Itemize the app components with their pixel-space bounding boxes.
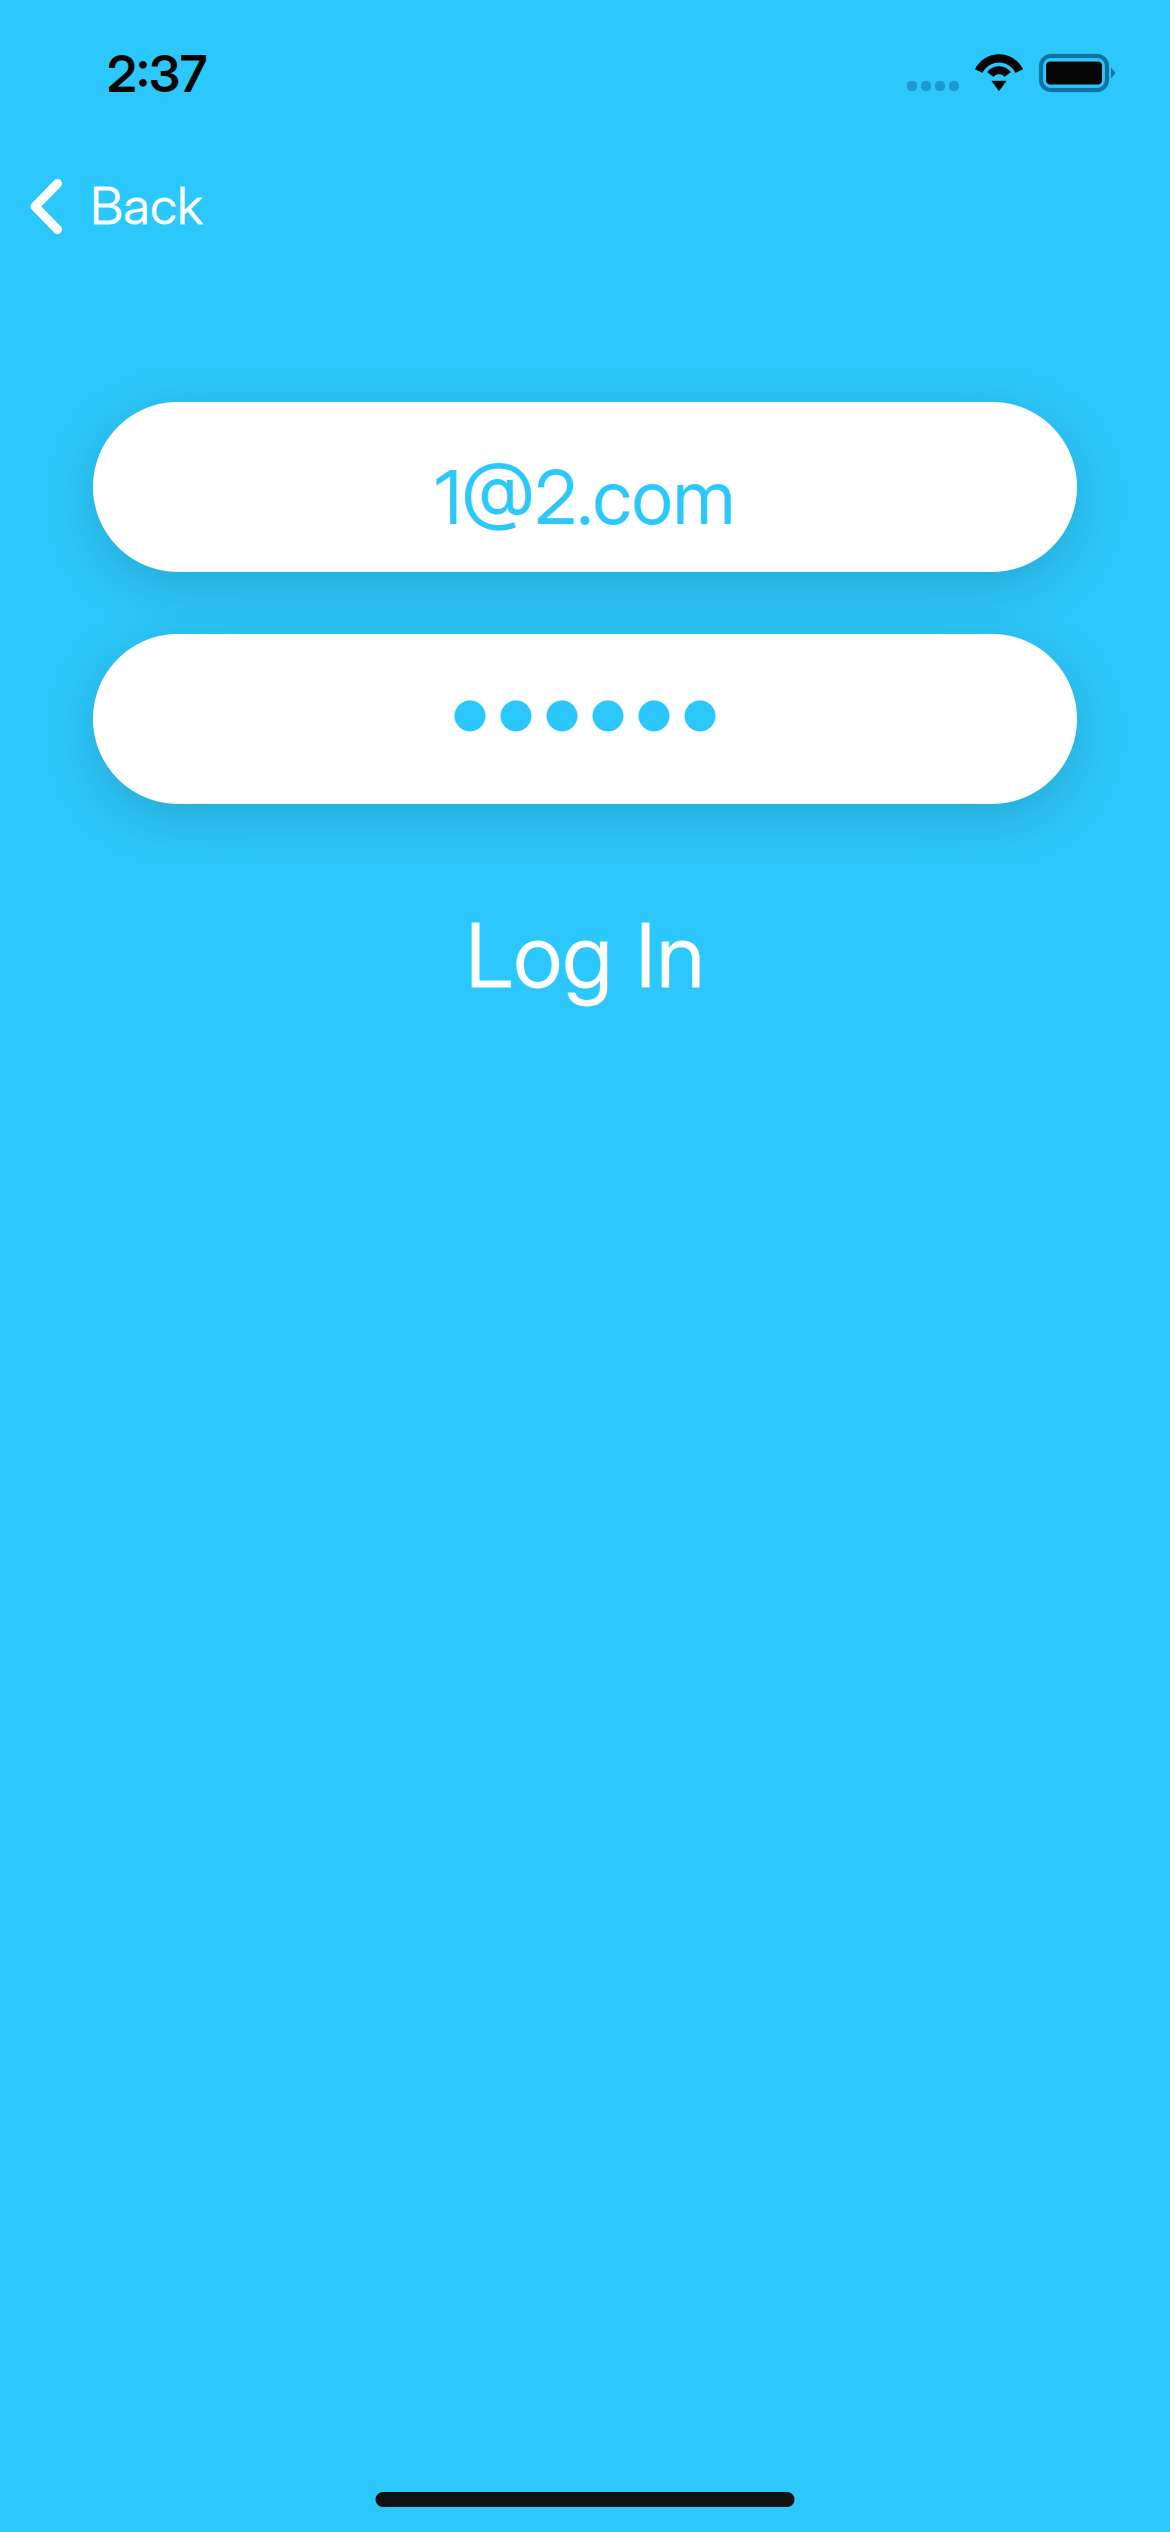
staticText: Log In — [465, 901, 705, 1009]
button[interactable]: Log In — [405, 885, 765, 1025]
button[interactable]: 1@2.com — [93, 402, 1077, 572]
staticText: 1@2.com — [434, 452, 735, 542]
staticText: 2:37 — [107, 43, 207, 104]
button[interactable]: Back — [0, 147, 227, 246]
staticText: Back — [90, 174, 203, 237]
button[interactable]: Password — [93, 634, 1077, 804]
